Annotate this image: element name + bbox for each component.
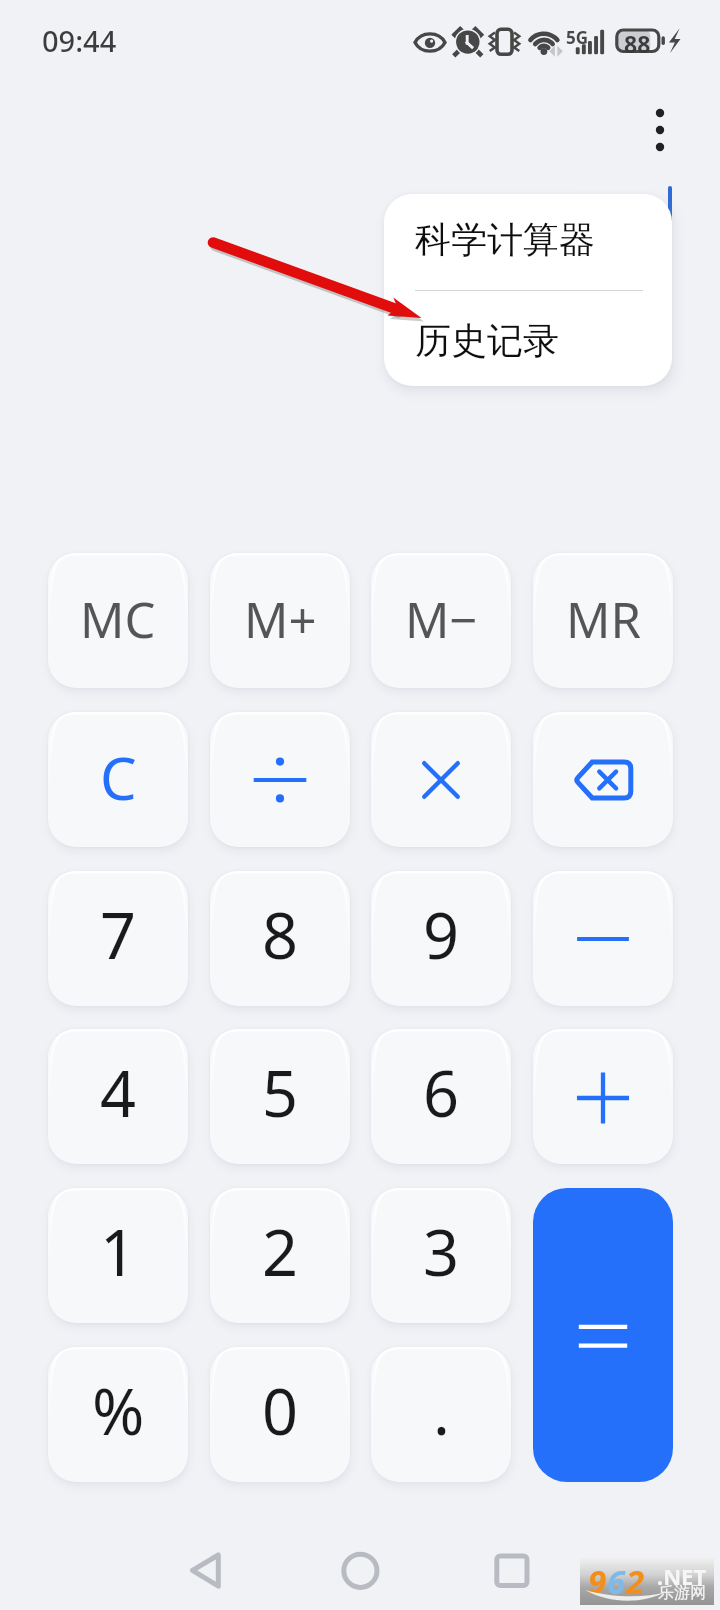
button[interactable]: 2 [210, 1188, 350, 1323]
staticText: % [92, 1368, 145, 1454]
button[interactable]: M− [371, 553, 511, 688]
staticText: MC [80, 586, 156, 653]
button[interactable]: C [48, 712, 188, 847]
staticText: 2 [626, 1559, 645, 1604]
button[interactable]: . [371, 1347, 511, 1482]
button[interactable]: 3 [371, 1188, 511, 1323]
staticText: 5G [566, 26, 589, 49]
staticText: 88 [624, 28, 651, 59]
staticText: 历史记录 [415, 318, 559, 363]
button[interactable]: 6 [371, 1029, 511, 1164]
button[interactable]: MR [533, 553, 673, 688]
staticText: MR [566, 586, 641, 653]
button[interactable]: 7 [48, 871, 188, 1006]
staticText: 6 [607, 1559, 626, 1604]
button[interactable] [210, 712, 350, 847]
staticText: . [433, 1368, 450, 1454]
button[interactable]: 8 [210, 871, 350, 1006]
staticText: 3 [423, 1209, 460, 1295]
button[interactable]: Recents [476, 1535, 548, 1607]
button[interactable]: 1 [48, 1188, 188, 1323]
staticText: 9 [423, 892, 460, 978]
button[interactable]: Home [324, 1535, 396, 1607]
button[interactable] [533, 1188, 673, 1482]
button[interactable] [371, 712, 511, 847]
staticText: 5 [262, 1050, 299, 1136]
button[interactable]: 科学计算器 [384, 194, 672, 290]
staticText: 09:44 [42, 21, 117, 60]
button[interactable] [533, 712, 673, 847]
button[interactable]: More options [636, 88, 684, 160]
staticText: M− [405, 586, 478, 653]
button[interactable]: 历史记录 [384, 291, 672, 386]
staticText: .NET [657, 1561, 707, 1591]
staticText: 2 [262, 1209, 299, 1295]
button[interactable]: 0 [210, 1347, 350, 1482]
staticText: 科学计算器 [415, 217, 595, 262]
staticText: 9 [588, 1559, 607, 1604]
button[interactable] [533, 871, 673, 1006]
staticText: 1 [100, 1209, 137, 1295]
button[interactable] [533, 1029, 673, 1164]
staticText: 0 [262, 1368, 299, 1454]
button[interactable]: MC [48, 553, 188, 688]
button[interactable]: 9 [371, 871, 511, 1006]
button[interactable]: 5 [210, 1029, 350, 1164]
staticText: 8 [262, 892, 299, 978]
staticText: 6 [423, 1050, 460, 1136]
button[interactable]: % [48, 1347, 188, 1482]
button[interactable]: M+ [210, 553, 350, 688]
staticText: 7 [100, 892, 137, 978]
staticText: M+ [244, 586, 317, 653]
button[interactable]: Back [169, 1535, 241, 1607]
staticText: 乐游网 [658, 1583, 706, 1603]
staticText: 4 [100, 1050, 137, 1136]
button[interactable]: 4 [48, 1029, 188, 1164]
staticText: C [100, 738, 137, 817]
